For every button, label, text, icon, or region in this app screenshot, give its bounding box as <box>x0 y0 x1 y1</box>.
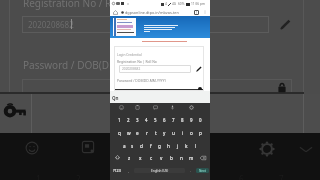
button[interactable]: 3 <box>133 114 142 125</box>
button[interactable]: Password manager <box>6 104 26 117</box>
button[interactable]: k <box>182 140 191 151</box>
staticText: n <box>180 155 183 161</box>
button[interactable]: n <box>176 152 186 163</box>
button[interactable]: d <box>137 140 146 151</box>
staticText: z <box>128 155 131 161</box>
staticText: 8 <box>181 117 184 123</box>
button[interactable]: m <box>186 152 196 163</box>
staticText: b <box>170 155 173 161</box>
staticText: 4 <box>145 117 148 123</box>
button[interactable]: g <box>155 140 164 151</box>
staticText: h <box>167 143 170 149</box>
button[interactable]: c <box>146 152 156 163</box>
button[interactable]: Home <box>110 8 210 16</box>
button[interactable]: h <box>164 140 173 151</box>
staticText: t <box>155 130 157 136</box>
staticText: , <box>128 168 130 174</box>
button[interactable]: Settings <box>189 105 194 110</box>
staticText: y <box>163 130 166 136</box>
button[interactable]: 1 <box>115 114 124 125</box>
button[interactable]: q <box>115 127 124 138</box>
button[interactable]: u <box>169 127 178 138</box>
staticText: Password / DOB(DD-MM-YYYY) <box>117 78 166 83</box>
button[interactable]: Hide keyboard <box>298 145 314 154</box>
staticText: d <box>140 143 143 149</box>
button[interactable]: 2 <box>124 114 133 125</box>
button[interactable]: GIF <box>81 140 95 154</box>
staticText: w <box>127 130 131 136</box>
button[interactable]: 4 <box>142 114 151 125</box>
button[interactable]: z <box>124 152 135 163</box>
staticText: 2020208682 <box>28 19 74 30</box>
button[interactable]: t <box>151 127 160 138</box>
button[interactable]: y <box>160 127 169 138</box>
button[interactable]: Emoji <box>119 105 124 110</box>
button[interactable]: w <box>124 127 133 138</box>
button[interactable]: Next <box>196 168 209 173</box>
staticText: 4G <box>172 2 177 6</box>
button[interactable]: Voice input <box>170 105 175 110</box>
staticText: 1 <box>118 117 121 123</box>
staticText: Password / DOB(DD- <box>23 58 120 72</box>
staticText: k <box>185 143 188 149</box>
staticText: 2020208682 <box>122 67 141 71</box>
staticText: u <box>172 130 175 136</box>
button[interactable]: a <box>120 140 128 151</box>
button[interactable]: e <box>133 127 142 138</box>
staticText: 6 <box>163 117 166 123</box>
button[interactable]: Edit <box>278 17 293 32</box>
button[interactable]: Translate <box>153 105 158 110</box>
button[interactable]: 8 <box>178 114 187 125</box>
button[interactable]: 6 <box>160 114 169 125</box>
button[interactable]: f <box>146 140 155 151</box>
staticText: ?123 <box>113 168 121 173</box>
button[interactable]: 2020208682 <box>119 65 191 73</box>
staticText: o <box>190 130 193 136</box>
button[interactable]: i <box>178 127 187 138</box>
button[interactable]: x <box>135 152 146 163</box>
button[interactable]: English (US) <box>134 168 185 173</box>
staticText: f <box>150 143 152 149</box>
button[interactable]: 0 <box>196 114 205 125</box>
button[interactable]: More options <box>203 10 207 14</box>
button[interactable]: Backspace <box>196 152 210 163</box>
button[interactable]: Edit <box>195 65 203 73</box>
staticText: 2 <box>127 117 130 123</box>
button[interactable]: p <box>196 127 205 138</box>
button[interactable]: , <box>123 165 134 176</box>
button[interactable]: ?123 <box>110 165 123 176</box>
button[interactable]: 9 <box>187 114 196 125</box>
button[interactable]: Shift <box>110 152 124 163</box>
staticText: j <box>177 143 179 149</box>
staticText: r <box>146 130 148 136</box>
button[interactable]: Home <box>113 10 118 15</box>
button[interactable]: l <box>191 140 200 151</box>
staticText: Registration No / Roll <box>23 0 123 10</box>
staticText: i <box>182 130 184 136</box>
button[interactable]: j <box>173 140 182 151</box>
staticText: 7 <box>172 117 175 123</box>
staticText: g <box>158 143 161 149</box>
button[interactable]: Settings <box>259 141 275 157</box>
button[interactable]: Tabs <box>194 10 199 15</box>
button[interactable]: Clipboard <box>135 105 140 110</box>
button[interactable]: 7 <box>169 114 178 125</box>
button[interactable]: Show password <box>277 82 287 93</box>
button[interactable]: 5 <box>151 114 160 125</box>
button[interactable]: r <box>142 127 151 138</box>
staticText: 3 <box>136 117 139 123</box>
button[interactable]: v <box>156 152 166 163</box>
staticText: p <box>199 130 202 136</box>
button[interactable]: Emoji <box>25 141 39 155</box>
staticText: l <box>195 143 197 149</box>
button[interactable]: o <box>187 127 196 138</box>
button[interactable]: s <box>128 140 137 151</box>
staticText: 11:56 pm <box>191 2 205 6</box>
button[interactable]: b <box>166 152 176 163</box>
staticText: 0 <box>199 117 202 123</box>
